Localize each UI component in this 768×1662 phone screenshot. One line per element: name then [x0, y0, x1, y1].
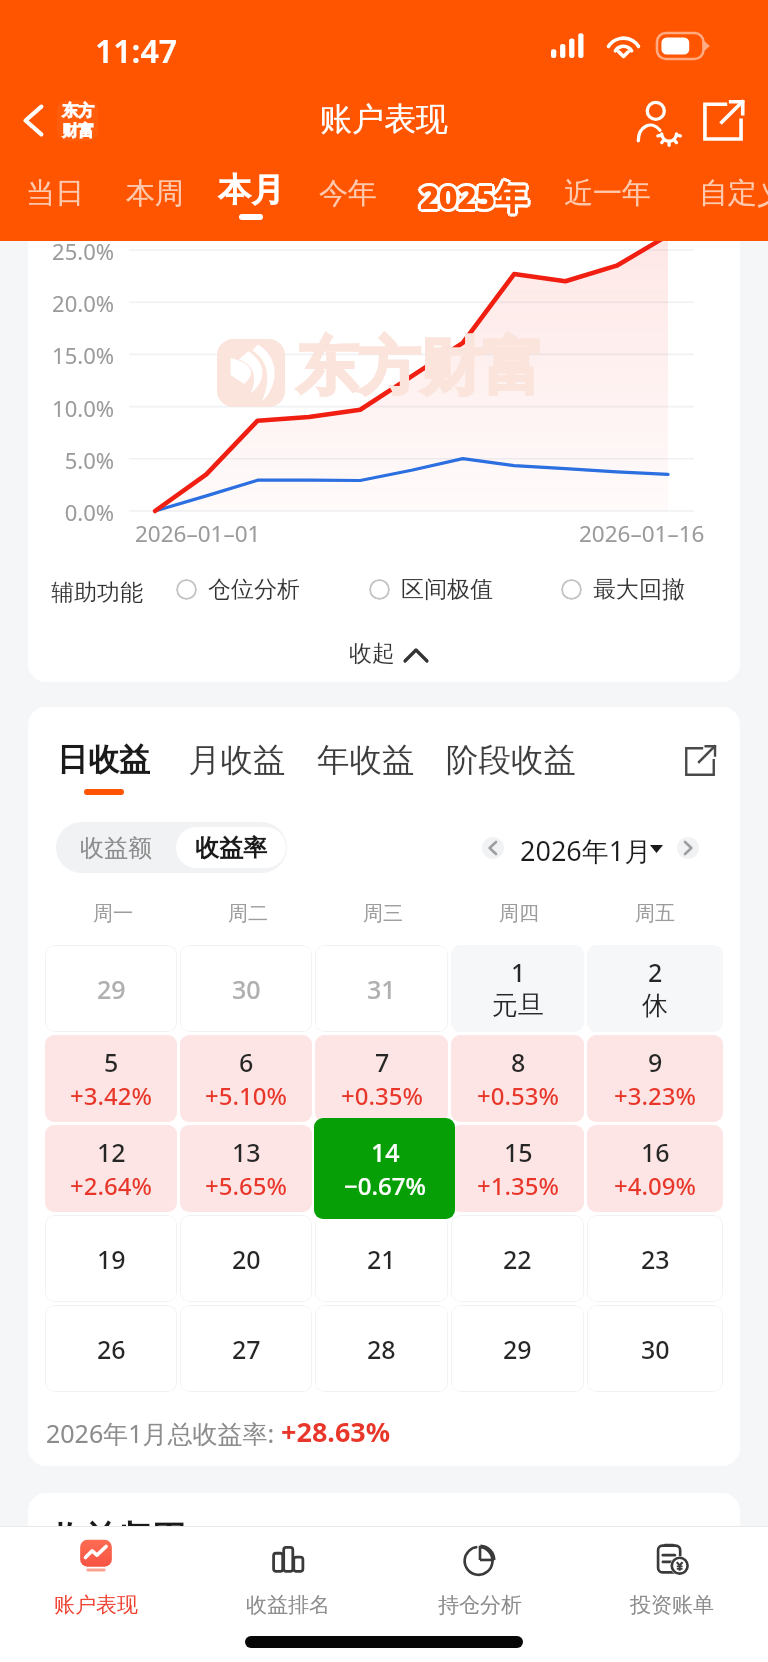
button[interactable]: 27 [180, 1305, 312, 1392]
button[interactable]: 本周 [119, 163, 191, 241]
button[interactable]: 区间极值 [369, 572, 493, 606]
button[interactable]: 12 [45, 1125, 177, 1212]
button[interactable]: 29 [45, 945, 177, 1032]
staticText: 仓位分析 [208, 575, 300, 604]
staticText: 22 [503, 1242, 532, 1276]
button[interactable]: 8 [451, 1035, 584, 1122]
staticText: 1 [511, 955, 526, 989]
staticText: 区间极值 [401, 575, 493, 604]
staticText: 辅助功能 [51, 578, 143, 607]
button[interactable]: 5 [45, 1035, 177, 1122]
staticText: 月收益 [188, 740, 286, 781]
button[interactable]: 31 [315, 945, 448, 1032]
button[interactable]: 收益排名 [192, 1527, 384, 1626]
button[interactable]: 持仓分析 [384, 1527, 576, 1626]
staticText: 5 [104, 1045, 119, 1079]
button[interactable]: 自定义 [692, 163, 768, 241]
staticText: 28 [367, 1332, 396, 1366]
button[interactable]: Back [18, 92, 102, 148]
button[interactable]: Share [672, 733, 728, 789]
button[interactable]: 收益率 [176, 827, 286, 868]
staticText: 近一年 [564, 175, 651, 212]
staticText: 10.0% [28, 393, 114, 423]
button[interactable]: 2025年 [404, 163, 544, 241]
button[interactable]: 16 [587, 1125, 723, 1212]
button[interactable]: 月收益 [179, 740, 294, 814]
button[interactable]: 本月 [215, 163, 287, 241]
staticText: 19 [97, 1242, 126, 1276]
staticText: 15.0% [28, 340, 114, 370]
staticText: +5.65% [205, 1169, 287, 1202]
staticText: +1.35% [477, 1169, 559, 1202]
staticText: 2025年 [417, 175, 525, 219]
staticText: 21 [367, 1242, 396, 1276]
staticText: 收益归因 [50, 1517, 186, 1560]
staticText: +5.10% [205, 1079, 287, 1112]
other: Back [22, 104, 44, 137]
staticText: 2025年 [420, 175, 528, 219]
button[interactable]: 2 [587, 945, 723, 1032]
staticText: 周一 [93, 901, 133, 926]
button[interactable]: 29 [451, 1305, 584, 1392]
staticText: 财富 [62, 121, 94, 141]
button[interactable]: 1 [451, 945, 584, 1032]
staticText: 16 [641, 1135, 670, 1169]
button[interactable]: 13 [180, 1125, 312, 1212]
button[interactable]: 近一年 [557, 163, 657, 241]
staticText: 周四 [499, 901, 539, 926]
staticText: 东方 [62, 101, 94, 121]
staticText: 当日 [26, 175, 84, 212]
button[interactable]: 阶段收益 [436, 740, 586, 814]
button[interactable]: 30 [180, 945, 312, 1032]
button[interactable]: Account [630, 92, 688, 150]
staticText: 2025年 [420, 172, 528, 216]
button[interactable]: 年收益 [308, 740, 423, 814]
button[interactable]: 26 [45, 1305, 177, 1392]
button[interactable]: 日收益 [46, 740, 161, 814]
button[interactable]: 14 [314, 1118, 455, 1219]
staticText: 收益率 [195, 833, 267, 863]
staticText: 休 [642, 989, 668, 1022]
button[interactable]: 9 [587, 1035, 723, 1122]
staticText: 2026–01–01 [135, 518, 261, 549]
staticText: +28.63% [281, 1413, 391, 1450]
staticText: 2025年 [420, 178, 528, 222]
button[interactable]: Previous month [482, 837, 504, 859]
button[interactable]: 收益额 [56, 822, 175, 873]
staticText: 本周 [126, 175, 184, 212]
button[interactable]: 收起 [341, 633, 435, 674]
button[interactable]: 账户表现 [0, 1527, 192, 1626]
staticText: 自定义 [699, 175, 768, 212]
button[interactable]: 15 [451, 1125, 584, 1212]
staticText: 2025年 [418, 173, 526, 217]
button[interactable]: 仓位分析 [176, 572, 300, 606]
button[interactable]: 当日 [19, 163, 91, 241]
button[interactable]: 22 [451, 1215, 584, 1302]
staticText: +0.53% [477, 1079, 559, 1112]
button[interactable]: 2026年1月 [520, 821, 660, 869]
button[interactable]: 6 [180, 1035, 312, 1122]
button[interactable]: 23 [587, 1215, 723, 1302]
staticText: 2026年1月总收益率: [46, 1416, 281, 1450]
button[interactable]: 19 [45, 1215, 177, 1302]
button[interactable]: 最大回撤 [561, 572, 685, 606]
staticText: 29 [503, 1332, 532, 1366]
button[interactable]: 30 [587, 1305, 723, 1392]
button[interactable]: Next month [677, 837, 699, 859]
staticText: 26 [97, 1332, 126, 1366]
button[interactable]: Share [694, 92, 752, 150]
staticText: 东方财富 [296, 328, 544, 406]
staticText: 25.0% [28, 236, 114, 266]
button[interactable]: 投资账单 [576, 1527, 768, 1626]
button[interactable]: 今年 [312, 163, 384, 241]
button[interactable]: 28 [315, 1305, 448, 1392]
button[interactable]: 7 [315, 1035, 448, 1122]
staticText: 收益排名 [246, 1592, 330, 1618]
staticText: 20 [232, 1242, 261, 1276]
staticText: 20.0% [28, 288, 114, 318]
staticText: 阶段收益 [446, 740, 576, 781]
button[interactable]: 21 [315, 1215, 448, 1302]
staticText: 账户表现 [54, 1592, 138, 1618]
staticText: 收起 [349, 639, 395, 668]
button[interactable]: 20 [180, 1215, 312, 1302]
